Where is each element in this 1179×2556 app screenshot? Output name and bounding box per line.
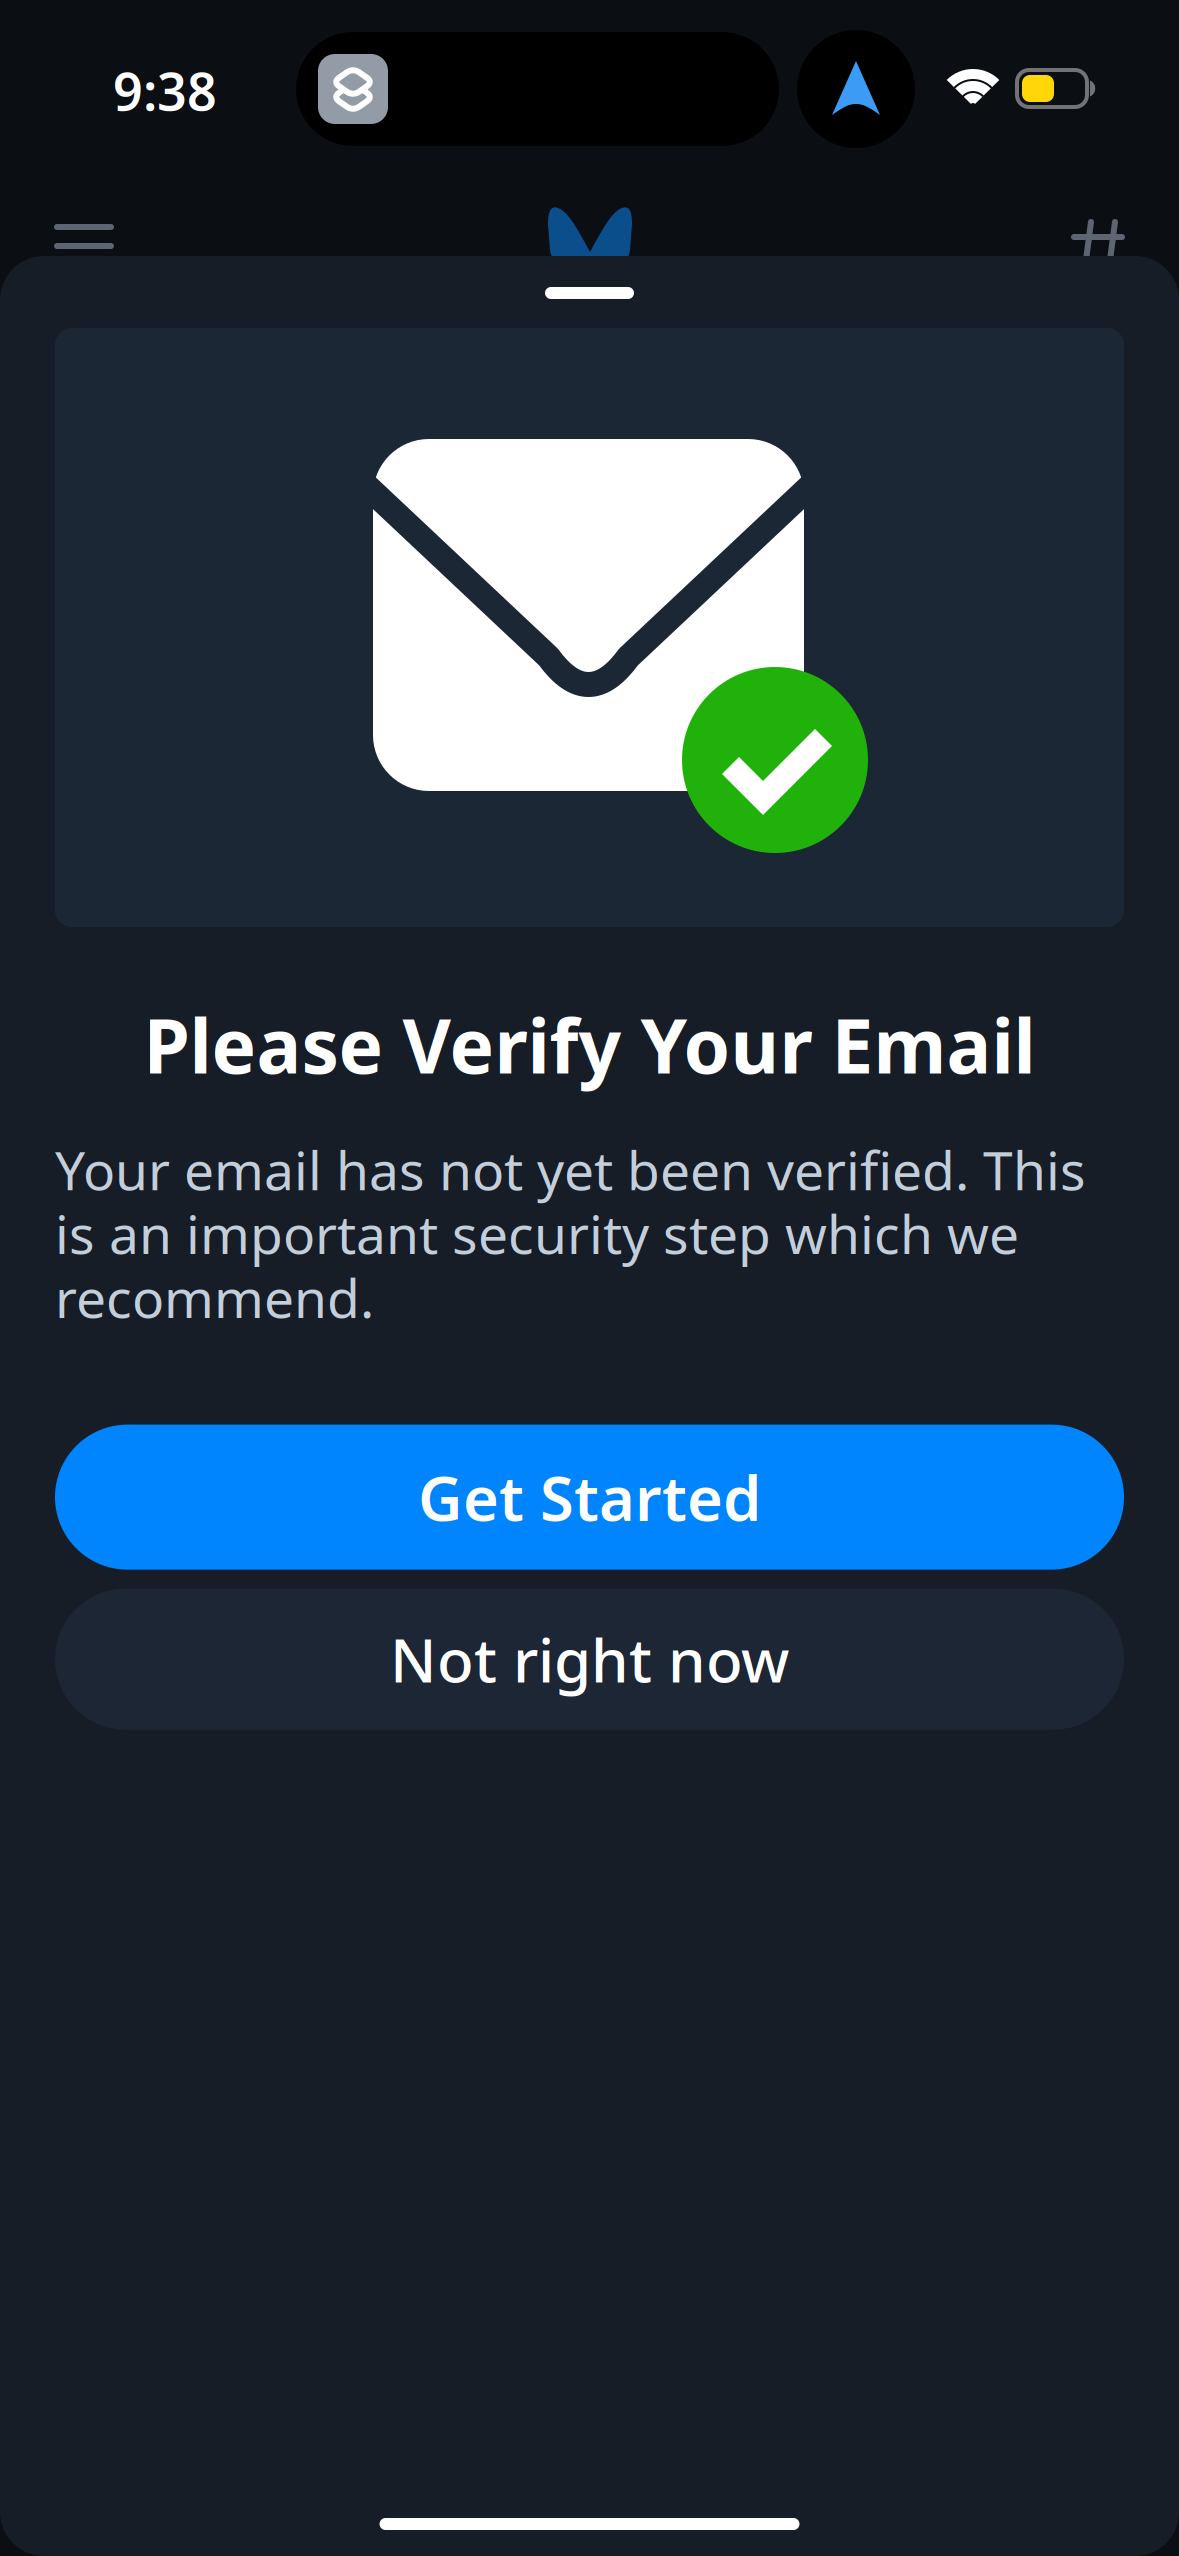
- button[interactable]: Not right now: [55, 1589, 1124, 1730]
- staticText: 9:38: [113, 56, 217, 125]
- button[interactable]: Feeds: [1045, 208, 1151, 282]
- staticText: Your email has not yet been verified. Th…: [55, 1134, 1086, 1333]
- button[interactable]: Get Started: [55, 1425, 1124, 1570]
- staticText: Please Verify Your Email: [143, 995, 1035, 1094]
- staticText: Get Started: [418, 1456, 761, 1538]
- staticText: Not right now: [390, 1619, 789, 1699]
- button[interactable]: Menu: [28, 202, 140, 271]
